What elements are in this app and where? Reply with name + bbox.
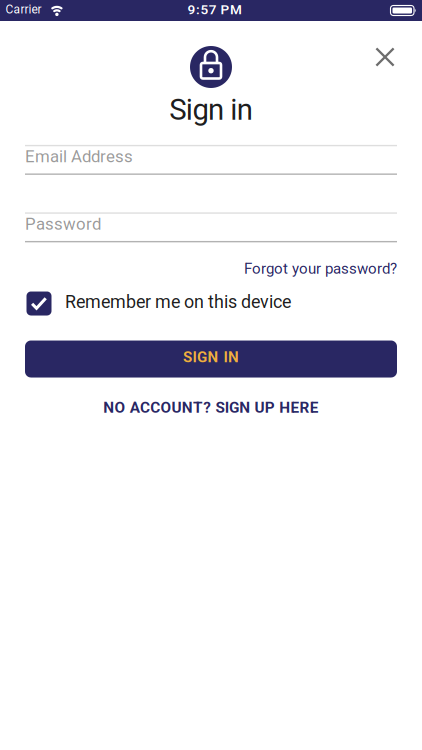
- staticText: Remember me on this device: [65, 291, 291, 312]
- staticText: Password: [25, 214, 101, 234]
- staticText: 9:57 PM: [188, 1, 242, 17]
- button[interactable]: NO ACCOUNT? SIGN UP HERE: [103, 398, 319, 416]
- button[interactable]: [375, 47, 394, 66]
- button[interactable]: Password: [25, 212, 397, 242]
- staticText: SIGN IN: [183, 348, 239, 366]
- button[interactable]: Email Address: [25, 145, 397, 175]
- button[interactable]: SIGN IN: [25, 340, 397, 377]
- staticText: Carrier: [5, 2, 41, 17]
- staticText: Forgot your password?: [244, 260, 397, 277]
- button[interactable]: Forgot your password?: [244, 260, 397, 277]
- staticText: Sign in: [169, 92, 253, 127]
- staticText: NO ACCOUNT? SIGN UP HERE: [103, 398, 319, 416]
- button[interactable]: Remember me on this device: [26, 291, 397, 315]
- staticText: Email Address: [25, 147, 133, 166]
